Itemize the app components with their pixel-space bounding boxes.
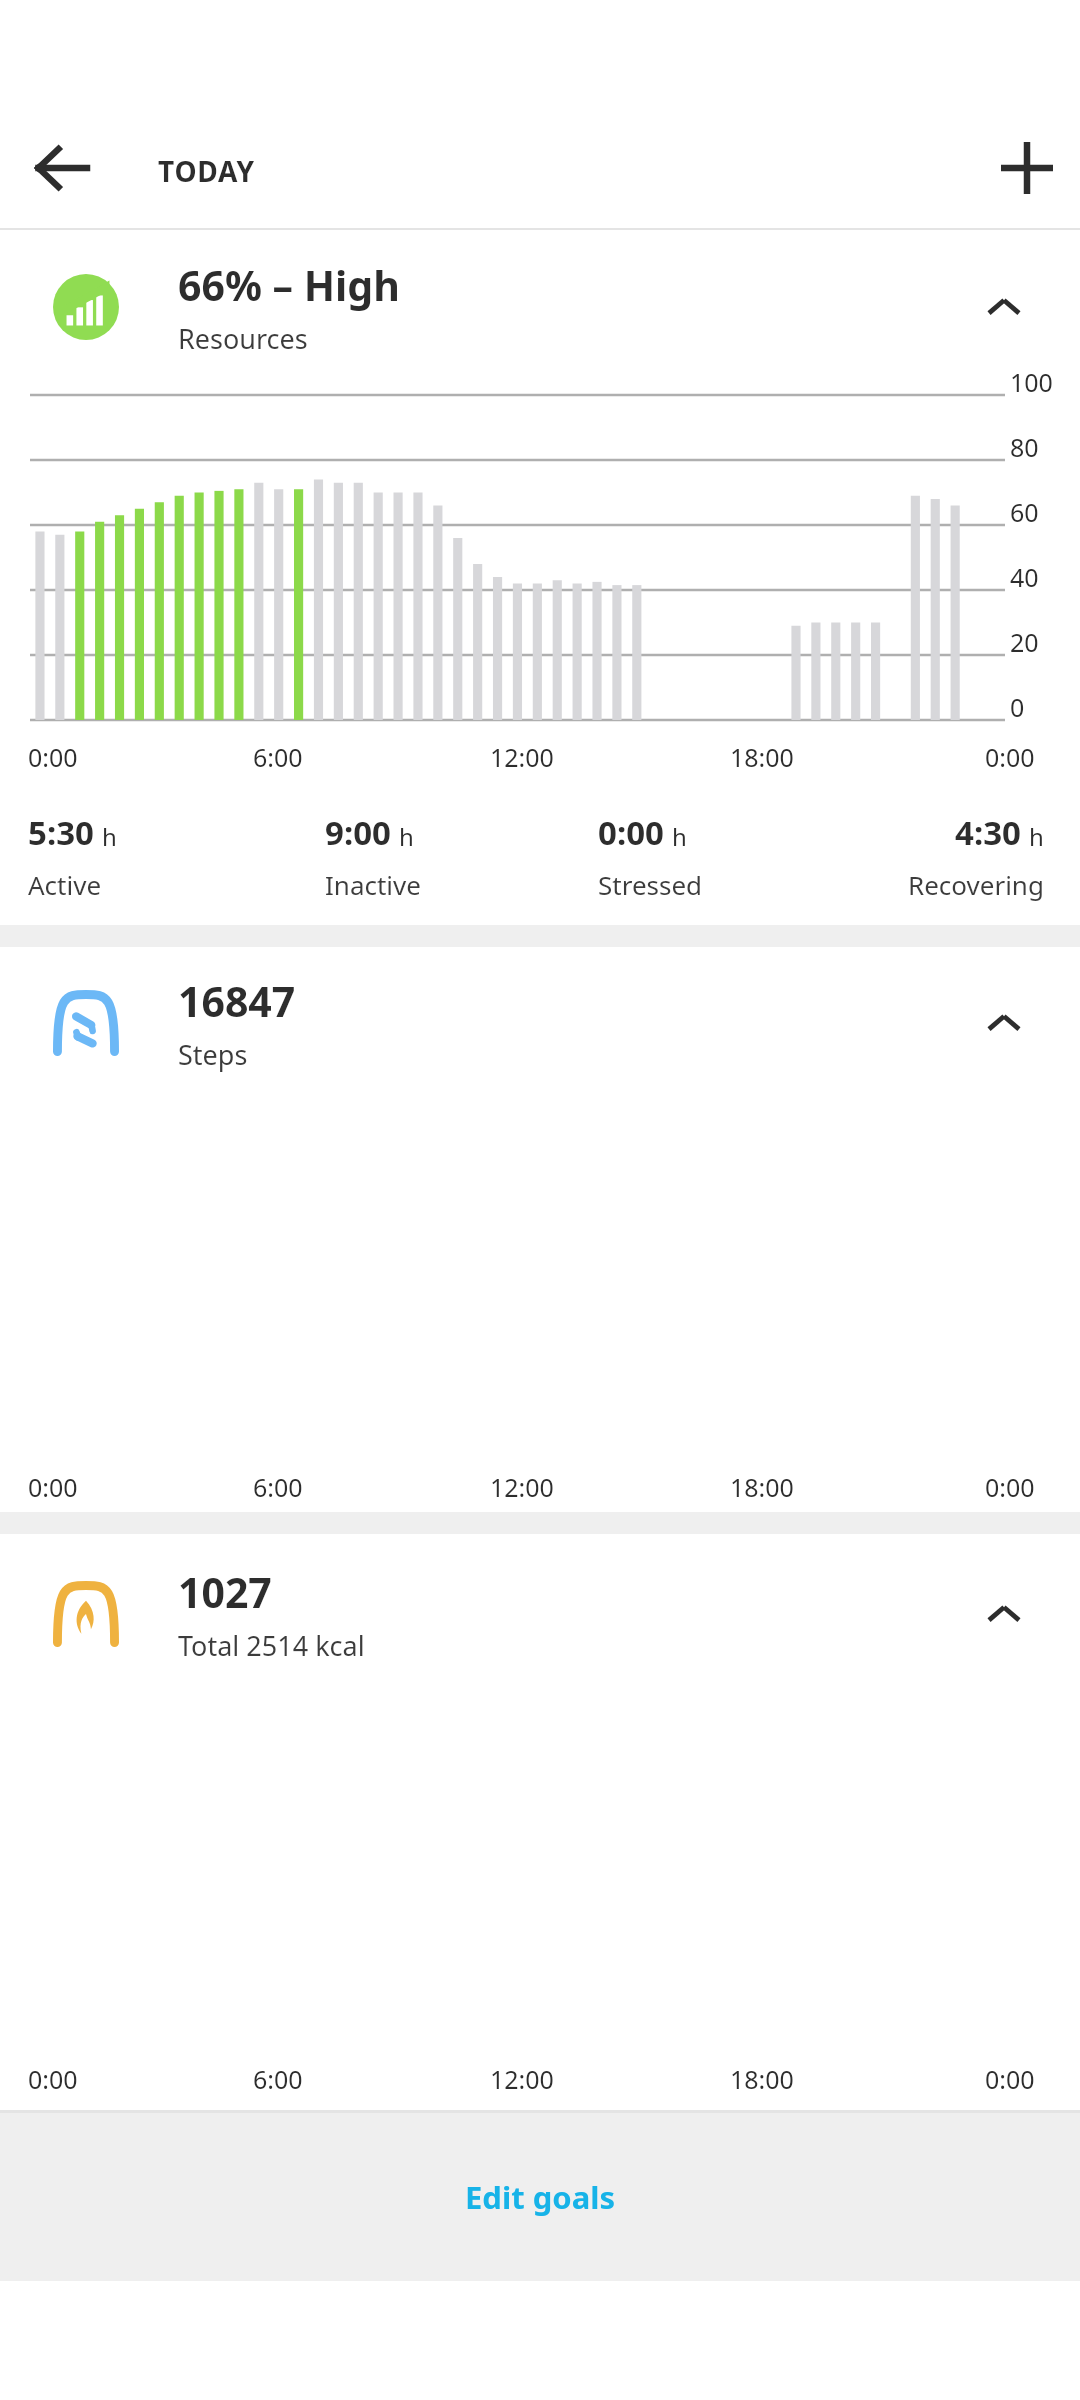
staticText: 100	[1010, 365, 1053, 399]
staticText: 0:00	[28, 2062, 78, 2096]
staticText: 40	[1010, 560, 1039, 594]
staticText: 6:00	[253, 1470, 303, 1504]
staticText: 66% – High	[178, 257, 400, 313]
staticText: 20	[1010, 625, 1039, 659]
staticText: Resources	[178, 320, 308, 357]
button[interactable]: Resources	[0, 236, 1080, 378]
button[interactable]: Edit goals	[0, 2113, 1080, 2281]
button[interactable]: Steps	[0, 952, 1080, 1094]
staticText: h	[672, 820, 687, 853]
staticText: 0:00	[985, 740, 1035, 774]
staticText: Stressed	[598, 867, 703, 902]
button[interactable]: Calories	[0, 1543, 1080, 1685]
button[interactable]: Collapse	[968, 987, 1040, 1059]
staticText: Recovering	[908, 867, 1044, 902]
staticText: 18:00	[730, 2062, 794, 2096]
staticText: 16847	[178, 973, 296, 1029]
other: Calories	[53, 1581, 119, 1647]
staticText: h	[399, 820, 414, 853]
staticText: 6:00	[253, 2062, 303, 2096]
button[interactable]: Collapse	[968, 271, 1040, 343]
staticText: 12:00	[490, 1470, 554, 1504]
staticText: TODAY	[158, 152, 255, 190]
staticText: 9:00	[325, 810, 391, 855]
staticText: 12:00	[490, 740, 554, 774]
other: Steps	[53, 990, 119, 1056]
staticText: 0:00	[28, 1470, 78, 1504]
staticText: 0:00	[598, 810, 664, 855]
staticText: 0:00	[28, 740, 78, 774]
staticText: 1027	[178, 1564, 272, 1620]
staticText: 0	[1010, 690, 1025, 724]
staticText: 6:00	[253, 740, 303, 774]
staticText: 60	[1010, 495, 1039, 529]
staticText: 5:30	[28, 810, 94, 855]
staticText: 80	[1010, 430, 1039, 464]
staticText: h	[1029, 820, 1044, 853]
staticText: Steps	[178, 1036, 248, 1073]
button[interactable]: Back	[20, 126, 104, 210]
staticText: 0:00	[985, 1470, 1035, 1504]
staticText: 0:00	[985, 2062, 1035, 2096]
staticText: Edit goals	[465, 2176, 616, 2218]
other: Resources	[53, 274, 119, 340]
button[interactable]: Collapse	[968, 1578, 1040, 1650]
staticText: Inactive	[325, 867, 421, 902]
staticText: 18:00	[730, 1470, 794, 1504]
staticText: 12:00	[490, 2062, 554, 2096]
staticText: 18:00	[730, 740, 794, 774]
staticText: Total 2514 kcal	[178, 1627, 365, 1664]
button[interactable]: Add	[985, 126, 1069, 210]
staticText: Active	[28, 867, 102, 902]
staticText: 4:30	[955, 810, 1021, 855]
staticText: h	[102, 820, 117, 853]
